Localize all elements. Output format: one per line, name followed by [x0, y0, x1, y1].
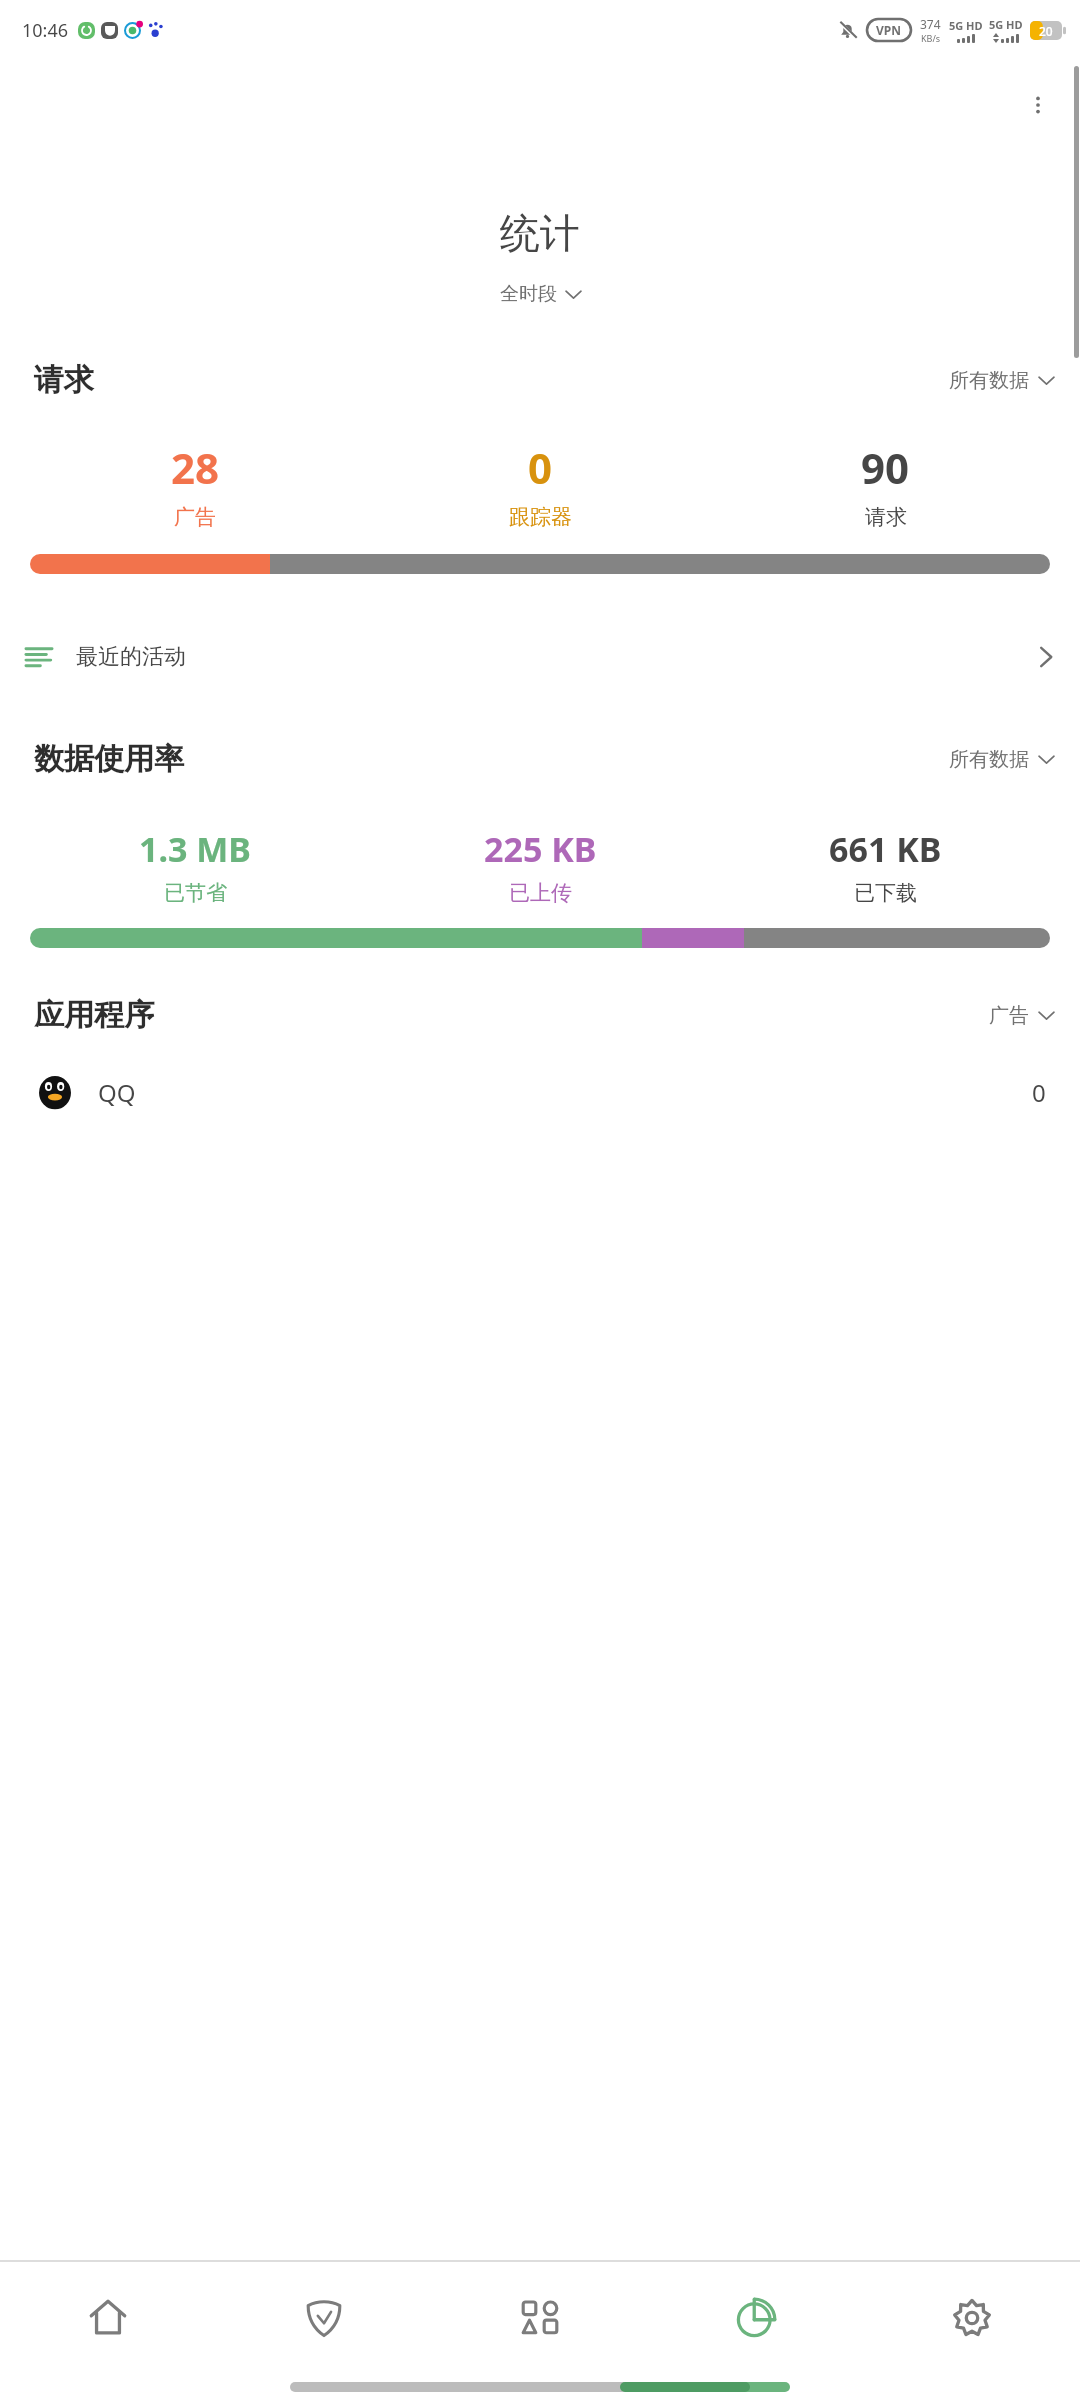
staticText: 661 KB	[829, 826, 942, 872]
staticText: 全时段	[500, 282, 557, 306]
staticText: 90	[861, 439, 910, 496]
staticText: QQ	[98, 1076, 136, 1109]
staticText: 广告	[174, 504, 216, 530]
staticText: 0	[528, 439, 553, 496]
staticText: 请求	[34, 361, 94, 399]
button[interactable]: 所有数据	[949, 368, 1054, 393]
button[interactable]: 1.3 MB	[22, 826, 368, 906]
staticText: 应用程序	[34, 996, 154, 1034]
staticText: 5G HD	[989, 17, 1023, 32]
staticText: 1.3 MB	[139, 826, 251, 872]
staticText: 数据使用率	[34, 740, 184, 778]
button[interactable]: Home	[0, 2262, 216, 2374]
staticText: 统计	[0, 208, 1080, 258]
button[interactable]: 225 KB	[368, 826, 713, 906]
staticText: 跟踪器	[509, 504, 572, 530]
staticText: 所有数据	[949, 747, 1029, 772]
button[interactable]: 最近的活动	[0, 622, 1080, 692]
staticText: 所有数据	[949, 368, 1029, 393]
staticText: 20	[1039, 23, 1053, 39]
button[interactable]: Statistics	[648, 2262, 864, 2374]
staticText: 10:46	[22, 18, 69, 43]
button[interactable]: 28	[22, 439, 368, 530]
staticText: 已上传	[509, 880, 572, 906]
button[interactable]: Protection	[216, 2262, 432, 2374]
button[interactable]: 所有数据	[949, 747, 1054, 772]
staticText: 最近的活动	[76, 643, 186, 671]
staticText: 广告	[989, 1003, 1029, 1028]
button[interactable]: More options	[1014, 81, 1062, 129]
staticText: 已节省	[164, 880, 227, 906]
staticText: 5G HD	[949, 18, 983, 33]
button[interactable]: 全时段	[0, 282, 1080, 306]
staticText: 374	[920, 16, 941, 32]
button[interactable]: QQ	[0, 1076, 1080, 1110]
button[interactable]: 90	[713, 439, 1058, 530]
button[interactable]: 0	[368, 439, 713, 530]
button[interactable]: 广告	[989, 1003, 1054, 1028]
staticText: 225 KB	[484, 826, 597, 872]
staticText: VPN	[876, 22, 902, 38]
staticText: KB/s	[921, 32, 941, 44]
staticText: 28	[171, 439, 220, 496]
staticText: 已下载	[854, 880, 917, 906]
button[interactable]: Apps	[432, 2262, 648, 2374]
staticText: 请求	[865, 504, 907, 530]
button[interactable]: Settings	[864, 2262, 1080, 2374]
button[interactable]: 661 KB	[713, 826, 1058, 906]
staticText: 0	[1032, 1076, 1046, 1109]
